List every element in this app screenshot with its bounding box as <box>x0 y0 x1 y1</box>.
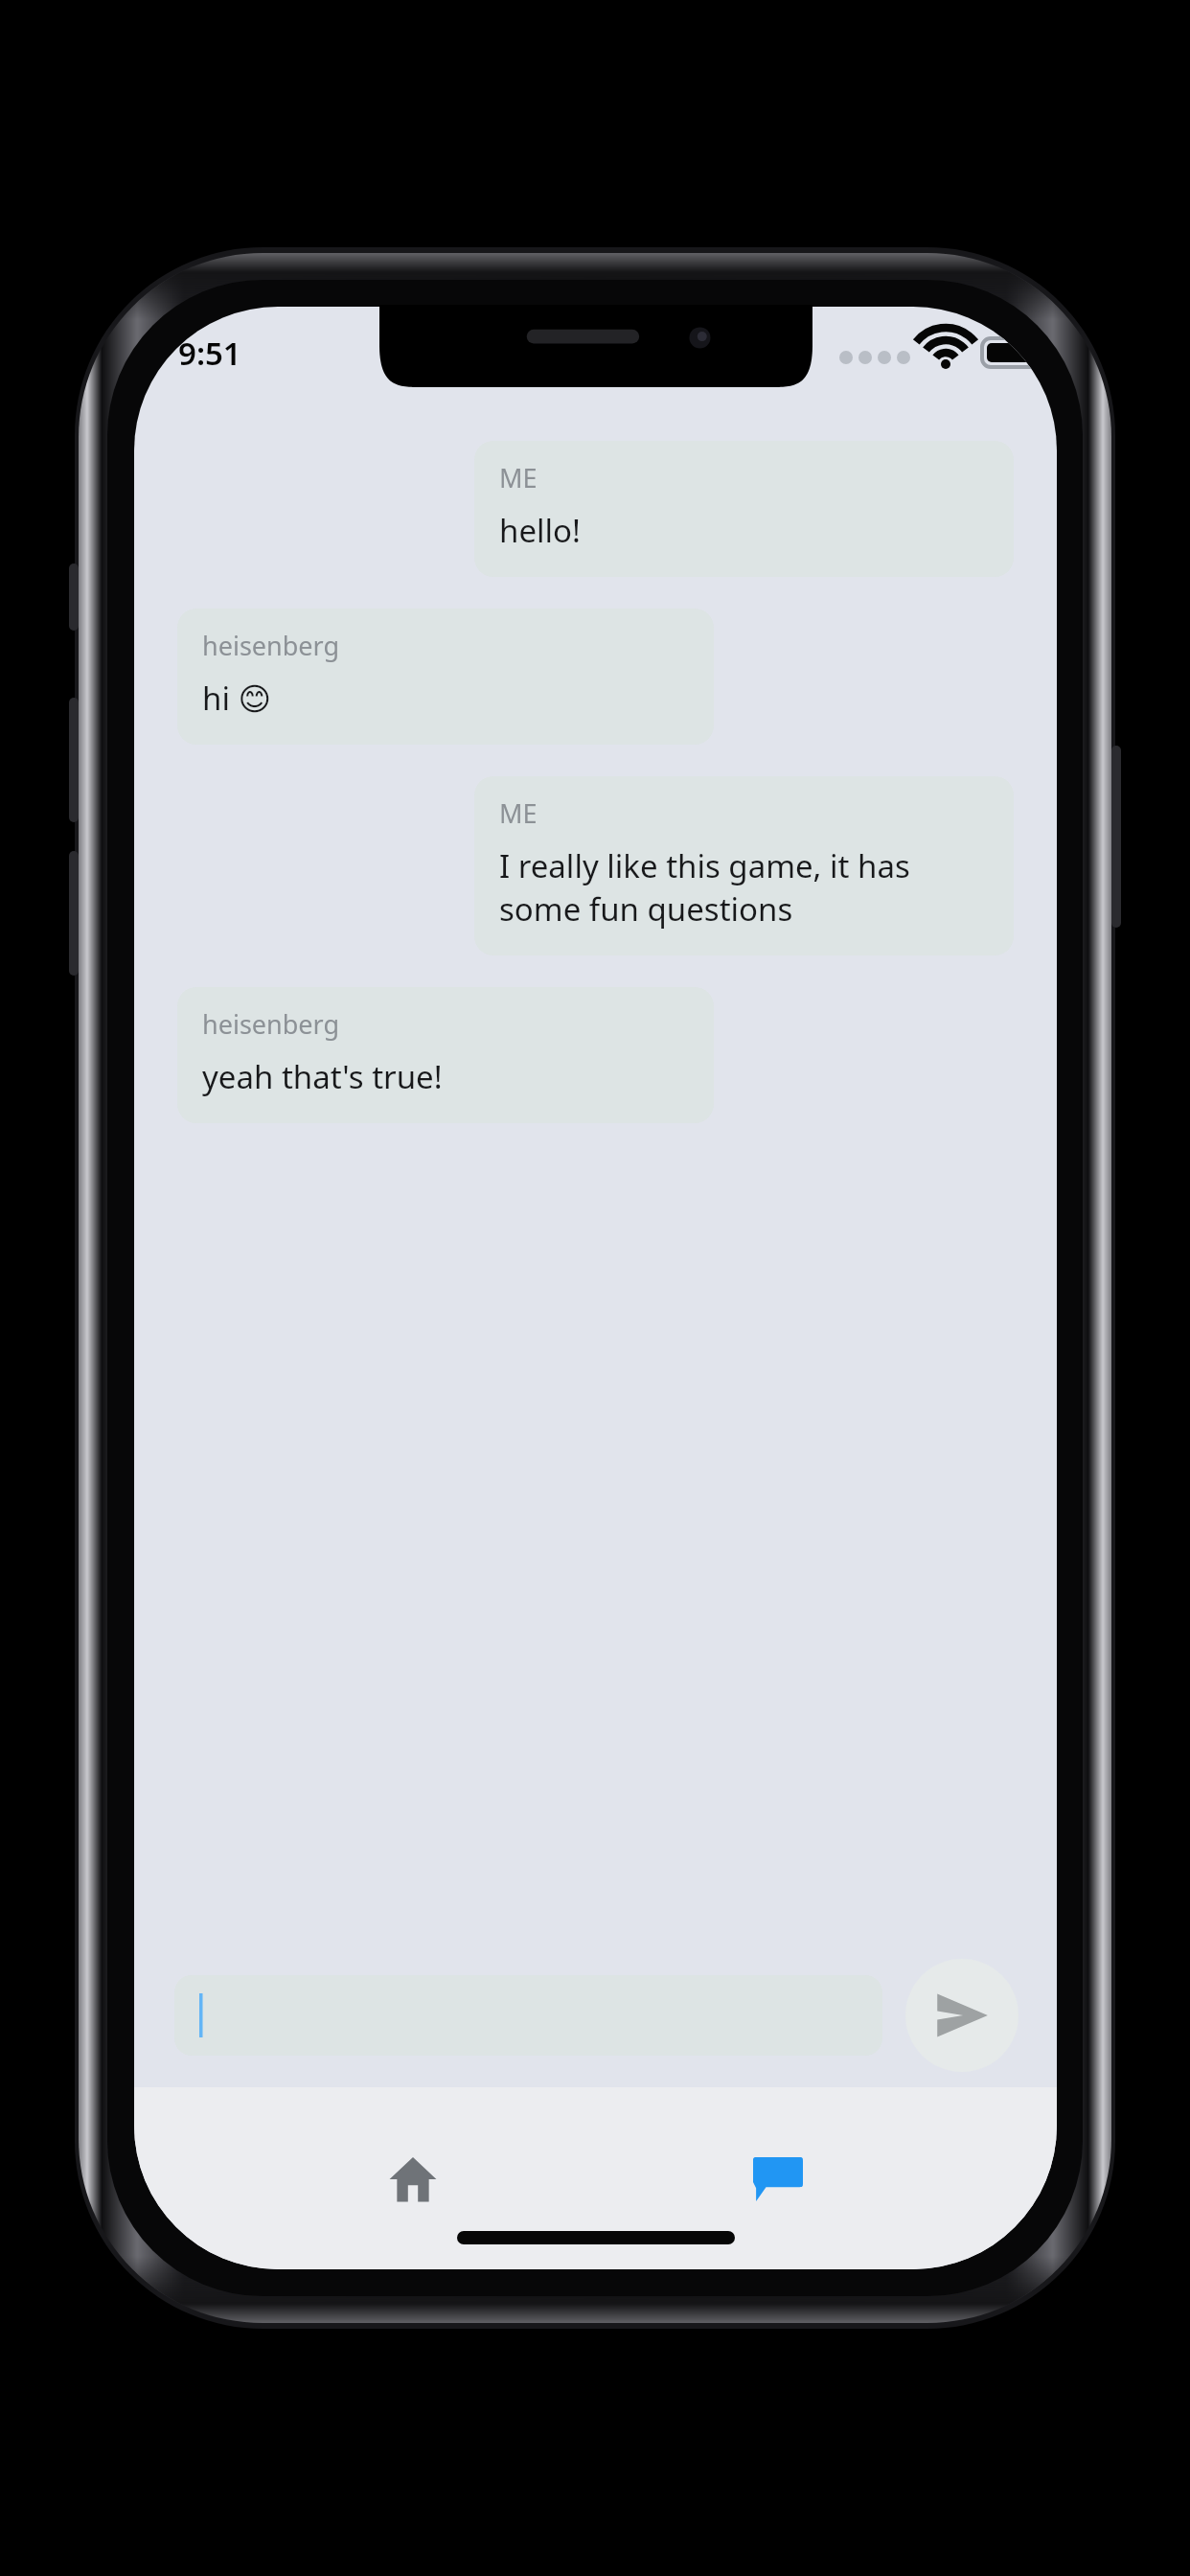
staticText: ME <box>499 795 538 831</box>
staticText: 9:51 <box>178 332 241 375</box>
staticText: hello! <box>499 509 581 552</box>
button[interactable] <box>174 1975 882 2056</box>
button[interactable]: heisenberg <box>177 609 714 745</box>
button[interactable]: Send <box>905 1959 1018 2072</box>
staticText: ME <box>499 460 538 495</box>
staticText: hi 😊 <box>202 677 271 720</box>
staticText: yeah that's true! <box>202 1055 443 1098</box>
button[interactable]: ME <box>474 441 1014 577</box>
staticText: heisenberg <box>202 628 340 663</box>
button[interactable]: Messages <box>692 2135 864 2223</box>
button[interactable]: ME <box>474 776 1014 955</box>
button[interactable]: Home <box>327 2135 499 2223</box>
staticText: I really like this game, it has some fun… <box>499 844 989 931</box>
button[interactable]: heisenberg <box>177 987 714 1123</box>
staticText: heisenberg <box>202 1006 340 1042</box>
